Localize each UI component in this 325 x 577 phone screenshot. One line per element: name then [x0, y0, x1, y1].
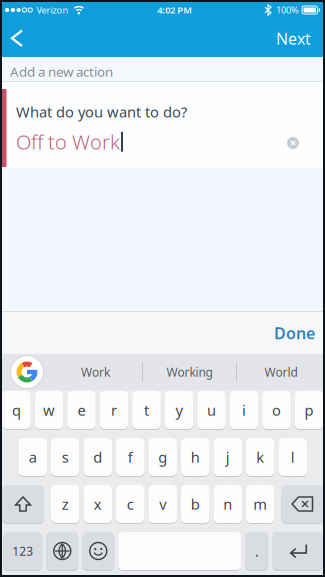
staticText: t	[144, 400, 149, 420]
staticText: q	[12, 400, 21, 420]
button[interactable]: e	[67, 391, 96, 429]
staticText: Verizon	[36, 4, 68, 16]
staticText: Working	[166, 364, 212, 380]
staticText: g	[158, 447, 167, 467]
staticText: o	[272, 400, 281, 420]
button[interactable]: Emoji	[82, 532, 114, 570]
button[interactable]: z	[51, 485, 79, 523]
button[interactable]: o	[262, 391, 291, 429]
button[interactable]: m	[246, 485, 274, 523]
button[interactable]: Delete	[281, 485, 323, 523]
staticText: v	[159, 494, 166, 514]
staticText: m	[253, 494, 267, 514]
button[interactable]: f	[116, 438, 144, 476]
button[interactable]: a	[18, 438, 47, 476]
button[interactable]: n	[213, 485, 242, 523]
button[interactable]: c	[116, 485, 144, 523]
staticText: b	[191, 494, 200, 514]
staticText: j	[226, 447, 230, 467]
staticText: Done	[274, 322, 315, 344]
button[interactable]: r	[100, 391, 128, 429]
button[interactable]: x	[83, 485, 112, 523]
staticText: World	[264, 364, 297, 380]
button[interactable]: w	[35, 391, 63, 429]
staticText: f	[128, 447, 133, 467]
staticText: p	[304, 400, 313, 420]
button[interactable]: v	[148, 485, 177, 523]
button[interactable]: 123	[3, 532, 42, 570]
staticText: n	[223, 494, 232, 514]
button[interactable]: l	[278, 438, 307, 476]
staticText: k	[256, 447, 264, 467]
button[interactable]: Back	[0, 29, 32, 48]
staticText: h	[191, 447, 200, 467]
staticText: w	[43, 400, 55, 420]
staticText: y	[175, 400, 182, 420]
button[interactable]: Clear text	[287, 137, 325, 149]
staticText: s	[62, 447, 69, 467]
button[interactable]: Return	[272, 532, 322, 570]
button[interactable]: b	[181, 485, 209, 523]
staticText: 100%	[276, 4, 299, 16]
staticText: u	[207, 400, 216, 420]
button[interactable]: Working	[143, 364, 236, 380]
staticText: 123	[12, 543, 33, 559]
button[interactable]: Shift	[2, 485, 44, 523]
button[interactable]: k	[246, 438, 274, 476]
button[interactable]: i	[230, 391, 258, 429]
button[interactable]: j	[213, 438, 242, 476]
button[interactable]: .	[245, 532, 268, 570]
button[interactable]: y	[165, 391, 193, 429]
button[interactable]: World	[237, 364, 325, 380]
button[interactable]: g	[148, 438, 177, 476]
staticText: c	[127, 494, 134, 514]
button[interactable]: u	[197, 391, 226, 429]
staticText: a	[29, 447, 37, 467]
staticText: Add a new action	[10, 63, 113, 80]
button[interactable]: Next	[276, 28, 325, 49]
button[interactable]: t	[132, 391, 161, 429]
button[interactable]: h	[181, 438, 209, 476]
staticText: Off to Work	[16, 128, 120, 155]
staticText: What do you want to do?	[16, 102, 187, 121]
staticText: r	[111, 400, 117, 420]
staticText: l	[291, 447, 295, 467]
button[interactable]: Switch keyboard	[46, 532, 78, 570]
staticText: d	[93, 447, 102, 467]
button[interactable]: d	[83, 438, 112, 476]
staticText: .	[255, 541, 259, 561]
staticText: x	[94, 494, 102, 514]
button[interactable]: Done	[274, 322, 325, 344]
button[interactable]: Google search	[0, 356, 43, 388]
staticText: z	[62, 494, 69, 514]
staticText: Next	[276, 28, 311, 49]
button[interactable]: q	[2, 391, 31, 429]
staticText: Work	[81, 364, 110, 380]
staticText: i	[242, 400, 246, 420]
staticText: 4:02 PM	[157, 4, 192, 16]
button[interactable]: p	[295, 391, 323, 429]
button[interactable]: Work	[49, 364, 142, 380]
staticText: e	[77, 400, 85, 420]
button[interactable]: s	[51, 438, 79, 476]
